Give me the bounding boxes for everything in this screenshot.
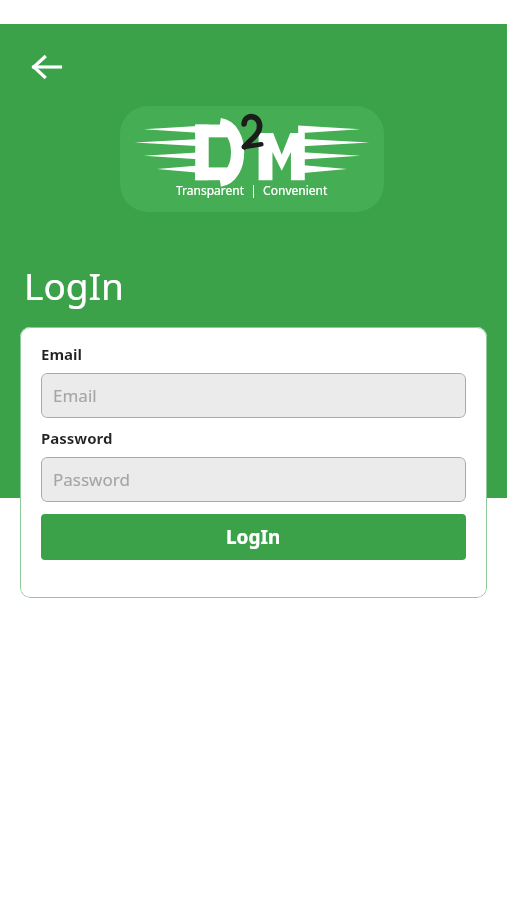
button[interactable]: Email [41,373,466,418]
staticText: Transparent | Convenient [176,182,328,198]
button[interactable]: LogIn [41,514,466,560]
staticText: Email [41,344,82,364]
staticText: LogIn [24,260,124,310]
button[interactable]: Password [41,457,466,502]
staticText: Email [53,384,97,407]
staticText: Password [41,428,113,448]
staticText: Password [53,468,130,491]
button[interactable]: Back [22,42,72,92]
staticText: LogIn [226,524,281,550]
